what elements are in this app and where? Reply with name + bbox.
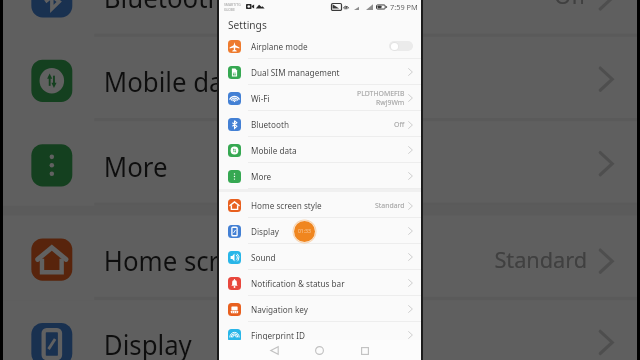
staticText: Mobile data — [104, 63, 249, 99]
staticText: Fingerprint ID — [251, 330, 305, 341]
staticText: Display — [104, 326, 192, 360]
staticText: SMART/TG — [224, 2, 241, 7]
button[interactable]: Bluetooth — [3, 0, 639, 37]
staticText: Display — [251, 226, 279, 237]
button[interactable]: Mobile data — [3, 37, 639, 121]
button[interactable]: More — [219, 163, 421, 189]
staticText: Bluetooth — [251, 119, 289, 130]
button[interactable]: Mobile data — [219, 137, 421, 163]
button[interactable]: Back — [266, 342, 283, 359]
button[interactable]: Home screen style — [219, 192, 421, 218]
staticText: Off — [554, 0, 589, 11]
button[interactable]: Airplane mode toggle — [389, 41, 413, 51]
button[interactable]: Display — [3, 300, 639, 360]
staticText: 7:59 PM — [390, 2, 418, 12]
button[interactable]: Notification & status bar — [219, 270, 421, 296]
button[interactable]: Home — [311, 342, 328, 359]
button[interactable]: Home screen style — [3, 216, 639, 300]
staticText: Mobile data — [251, 145, 297, 156]
button[interactable]: Bluetooth — [219, 111, 421, 137]
staticText: RwJ9Wm — [376, 98, 405, 107]
staticText: GLOBE — [224, 7, 235, 12]
staticText: Standard — [494, 245, 589, 274]
staticText: Standard — [375, 201, 405, 210]
staticText: Bluetooth — [104, 0, 223, 14]
button[interactable]: Sound — [219, 244, 421, 270]
button[interactable]: More — [3, 121, 639, 206]
staticText: Wi-Fi — [251, 93, 270, 104]
staticText: Home screen style — [251, 200, 322, 211]
staticText: Airplane mode — [251, 41, 308, 52]
staticText: Settings — [228, 18, 267, 32]
button[interactable]: Dual SIM management — [219, 59, 421, 85]
button[interactable]: Navigation key — [219, 296, 421, 322]
staticText: More — [104, 147, 170, 183]
staticText: Dual SIM management — [251, 67, 340, 78]
staticText: Home screen style — [104, 242, 327, 277]
staticText: More — [251, 171, 272, 182]
staticText: Navigation key — [251, 304, 308, 315]
button[interactable]: Wi-Fi — [219, 85, 421, 111]
staticText: Off — [394, 120, 405, 129]
staticText: Notification & status bar — [251, 278, 345, 289]
button[interactable]: Display — [219, 218, 421, 244]
staticText: PLDTHOMEFIB — [357, 89, 405, 98]
staticText: 01:33 — [298, 228, 311, 235]
button[interactable]: Recents — [356, 342, 373, 359]
button[interactable]: Fingerprint ID — [219, 322, 421, 348]
button[interactable]: Airplane mode — [219, 33, 421, 59]
staticText: Sound — [251, 252, 276, 263]
